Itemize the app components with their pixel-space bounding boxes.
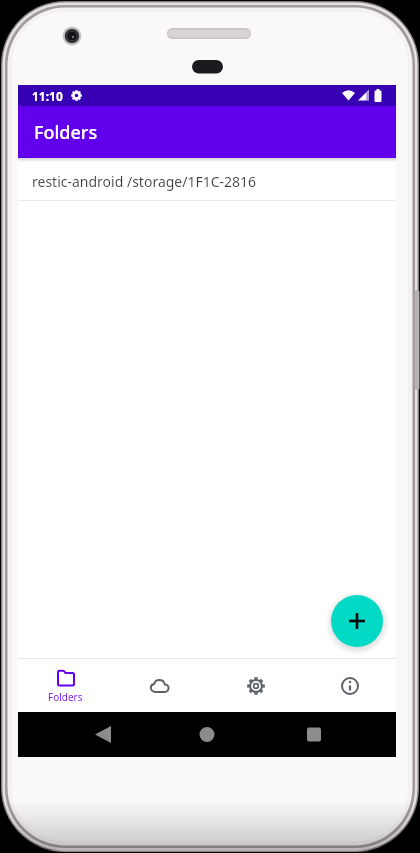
button[interactable]: [303, 659, 396, 712]
button[interactable]: Folders: [18, 659, 113, 712]
button[interactable]: [331, 595, 383, 647]
button[interactable]: [113, 659, 208, 712]
staticText: 11:10: [32, 88, 63, 104]
staticText: restic-android /storage/1F1C-2816: [32, 172, 257, 191]
staticText: Folders: [48, 690, 83, 704]
button[interactable]: restic-android /storage/1F1C-2816: [18, 162, 396, 200]
staticText: Folders: [34, 120, 98, 145]
button[interactable]: [208, 659, 303, 712]
